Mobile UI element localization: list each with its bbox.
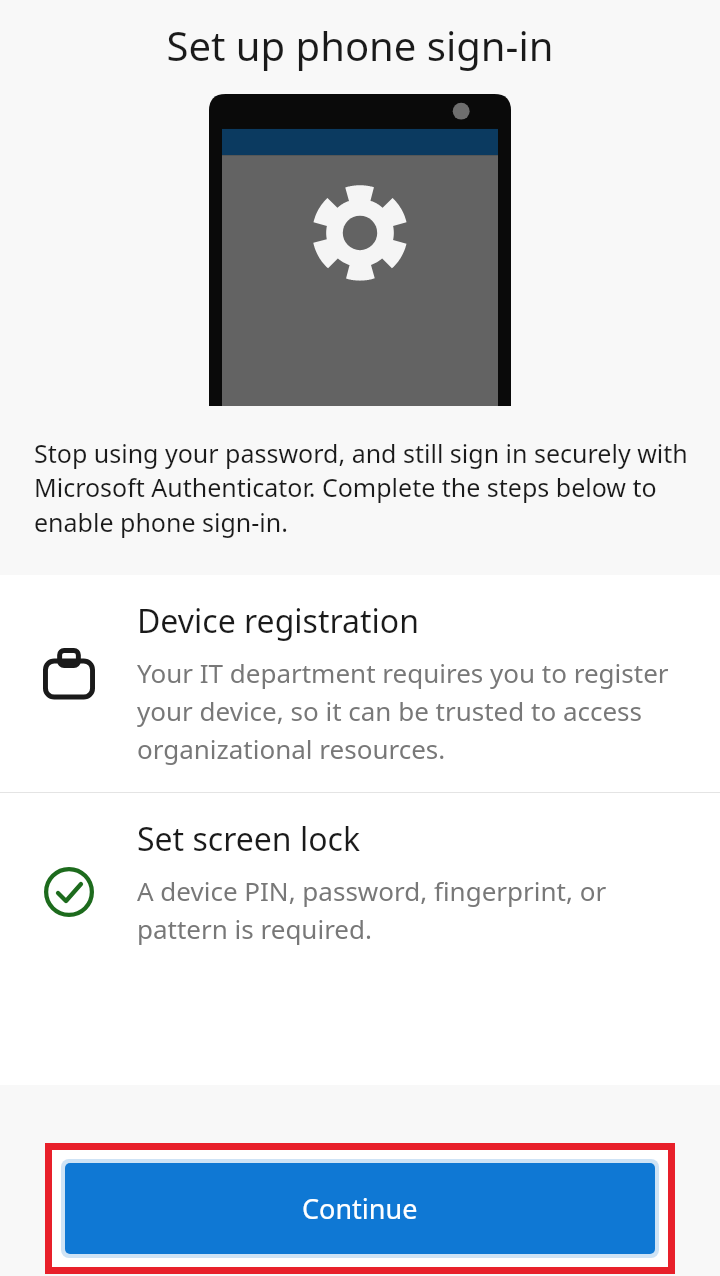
staticText: A device PIN, password, fingerprint, or … [137, 873, 696, 946]
button[interactable]: Continue [65, 1163, 655, 1254]
button[interactable]: Completed [0, 793, 720, 993]
button[interactable]: Device registration [0, 575, 720, 792]
other: Completed [44, 867, 94, 917]
staticText: Stop using your password, and still sign… [34, 436, 690, 540]
staticText: Set screen lock [137, 817, 361, 861]
staticText: Continue [302, 1190, 418, 1227]
staticText: Device registration [137, 599, 419, 643]
other: Device registration [43, 649, 95, 699]
staticText: Set up phone sign-in [0, 18, 720, 72]
staticText: Your IT department requires you to regis… [137, 655, 696, 766]
